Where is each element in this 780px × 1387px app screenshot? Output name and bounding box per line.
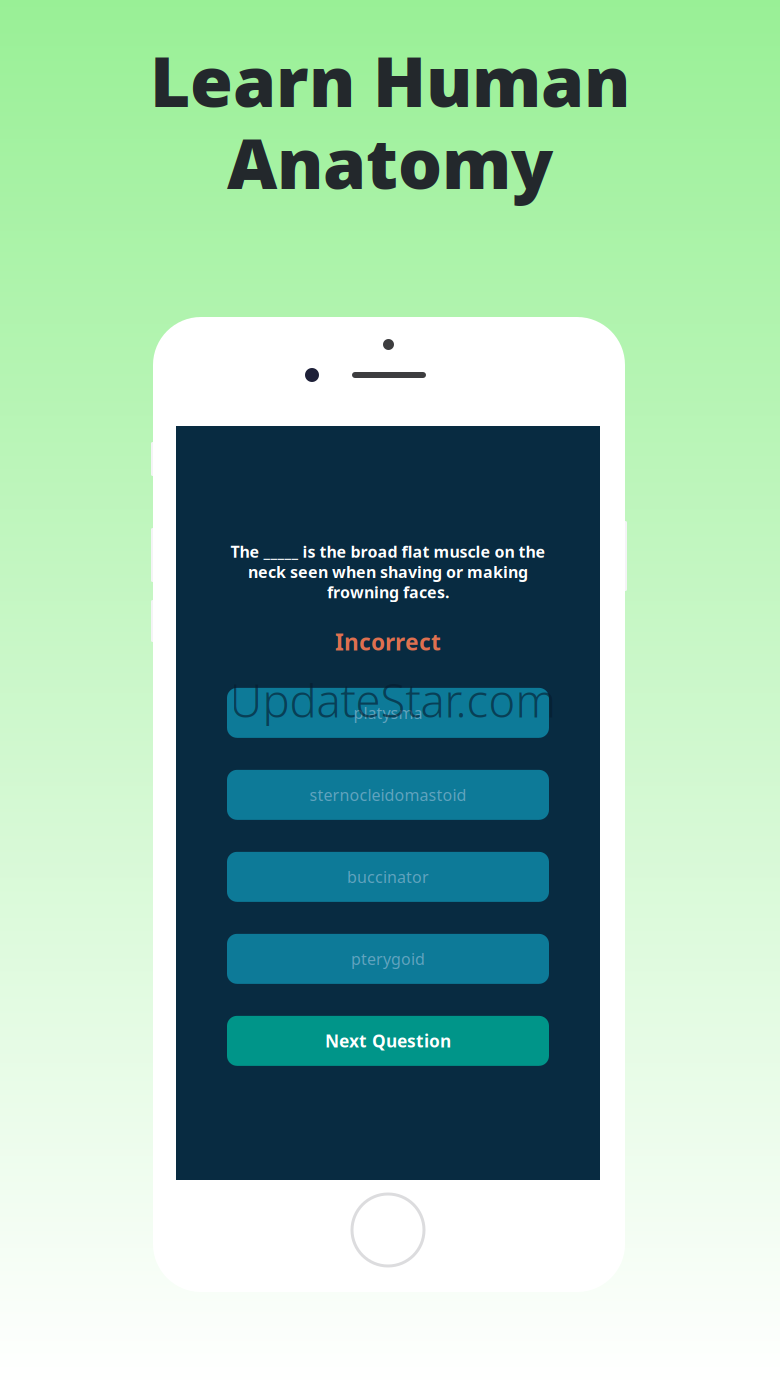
staticText: UpdateStar.com <box>229 670 556 730</box>
staticText: platysma <box>353 702 422 723</box>
staticText: The _____ is the broad flat muscle on th… <box>230 541 545 562</box>
button[interactable]: platysma <box>227 688 549 738</box>
staticText: sternocleidomastoid <box>309 784 466 805</box>
button[interactable]: pterygoid <box>227 934 549 984</box>
staticText: frowning faces. <box>327 581 449 603</box>
staticText: pterygoid <box>351 948 425 969</box>
button[interactable]: Next Question <box>227 1016 549 1066</box>
staticText: buccinator <box>347 866 429 887</box>
staticText: Anatomy <box>227 116 553 208</box>
staticText: Learn Human <box>150 34 630 126</box>
staticText: neck seen when shaving or making <box>248 561 528 582</box>
staticText: Next Question <box>325 1029 451 1052</box>
button[interactable]: buccinator <box>227 852 549 902</box>
button[interactable]: sternocleidomastoid <box>227 770 549 820</box>
staticText: Incorrect <box>335 627 441 657</box>
